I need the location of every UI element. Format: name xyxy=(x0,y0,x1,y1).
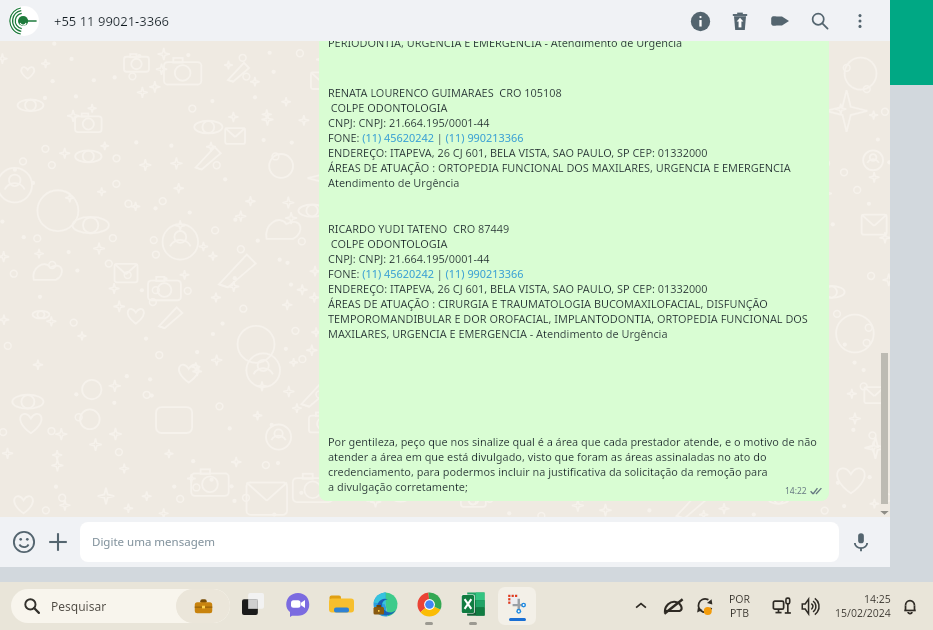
staticText: Por gentileza, peço que nos sinalize qua… xyxy=(328,434,817,449)
staticText: ENDEREÇO: ITAPEVA, 26 CJ 601, BELA VISTA… xyxy=(328,145,708,160)
button[interactable]: Dados do contato xyxy=(680,1,720,41)
button[interactable]: Gravar áudio xyxy=(850,531,872,553)
button[interactable]: Emojis xyxy=(13,531,35,553)
button[interactable]: Digite uma mensagem xyxy=(80,522,839,562)
staticText: atender a área em que está divulgado, vi… xyxy=(328,449,767,464)
button[interactable]: Explorador de Arquivos xyxy=(319,584,363,628)
button[interactable]: POR xyxy=(729,592,751,620)
button[interactable]: Mostrar ícones ocultos xyxy=(628,593,654,619)
staticText: FONE: (11) 45620242 | (11) 990213366 xyxy=(328,266,524,281)
staticText: 15/02/2024 xyxy=(835,606,891,620)
button[interactable]: Configurações de rede xyxy=(769,593,795,619)
button[interactable]: Pesquisar xyxy=(11,589,230,623)
button[interactable]: Google Chrome xyxy=(407,584,451,628)
button[interactable]: Excel xyxy=(451,584,495,628)
staticText: POR xyxy=(729,592,751,606)
staticText: COLPE ODONTOLOGIA xyxy=(328,236,448,251)
staticText: +55 11 99021-3366 xyxy=(54,12,170,30)
staticText: Atendimento de Urgência xyxy=(328,175,460,190)
staticText: CNPJ: CNPJ: 21.664.195/0001-44 xyxy=(328,115,490,130)
staticText: ÁREAS DE ATUAÇÃO : ORTOPEDIA FUNCIONAL D… xyxy=(328,160,791,175)
staticText: Digite uma mensagem xyxy=(92,534,215,550)
button[interactable]: Volume xyxy=(798,593,824,619)
button[interactable]: Pesquisar xyxy=(800,1,840,41)
button[interactable]: Foto do perfil xyxy=(9,6,39,36)
button[interactable]: Visualização de tarefas xyxy=(231,584,275,628)
staticText: credenciamento, para podermos incluir na… xyxy=(328,464,821,479)
staticText: PERIODONTIA, URGENCIA E EMERGENCIA - Ate… xyxy=(328,41,683,50)
staticText: Pesquisar xyxy=(51,598,107,614)
button[interactable]: Microsoft Edge xyxy=(363,584,407,628)
button[interactable]: Rolar para baixo xyxy=(878,506,890,517)
button[interactable]: Anexar xyxy=(47,531,69,553)
staticText: CNPJ: CNPJ: 21.664.195/0001-44 xyxy=(328,251,490,266)
button[interactable]: Mais opções xyxy=(840,1,880,41)
button[interactable]: Notificações xyxy=(897,593,923,619)
staticText: TEMPOROMANDIBULAR E DOR OROFACIAL, IMPLA… xyxy=(328,311,808,326)
staticText: PTB xyxy=(730,606,750,620)
button[interactable]: Atualizações do Windows xyxy=(692,593,718,619)
button[interactable]: Etiqueta xyxy=(760,1,800,41)
button[interactable]: Sem acesso à internet xyxy=(660,593,686,619)
staticText: RENATA LOURENCO GUIMARAES CRO 105108 xyxy=(328,85,562,100)
button[interactable]: Microsoft Teams xyxy=(275,584,319,628)
staticText: a divulgação corretamente; xyxy=(328,479,468,494)
staticText: MAXILARES, URGENCIA E EMERGENCIA - Atend… xyxy=(328,326,668,341)
staticText: 14:25 xyxy=(864,592,891,606)
button[interactable]: Excluir conversa xyxy=(720,1,760,41)
staticText: 14:22 xyxy=(785,485,807,497)
button[interactable]: 14:25 xyxy=(835,592,891,620)
staticText: ENDEREÇO: ITAPEVA, 26 CJ 601, BELA VISTA… xyxy=(328,281,708,296)
staticText: ÁREAS DE ATUAÇÃO : CIRURGIA E TRAUMATOLO… xyxy=(328,296,768,311)
staticText: RICARDO YUDI TATENO CRO 87449 xyxy=(328,221,510,236)
staticText: COLPE ODONTOLOGIA xyxy=(328,100,448,115)
button[interactable]: Ferramenta de Captura xyxy=(495,584,539,628)
staticText: FONE: (11) 45620242 | (11) 990213366 xyxy=(328,130,524,145)
